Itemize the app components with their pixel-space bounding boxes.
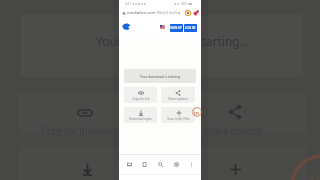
button[interactable]: Bookmarks (138, 158, 150, 170)
button[interactable]: LOG IN (184, 24, 197, 32)
staticText: m (194, 109, 200, 116)
staticText: LOG IN (185, 26, 196, 30)
staticText: mediafire.com (127, 10, 156, 16)
button[interactable]: Account (193, 10, 199, 16)
button[interactable]: Tabs (170, 158, 182, 170)
button[interactable]: Save to My Files (161, 107, 195, 123)
staticText: Copy for Innnnnnnn (41, 124, 127, 136)
staticText: Share options (204, 124, 263, 136)
staticText: Copy for link (132, 97, 150, 101)
staticText: Your download is starting (140, 74, 181, 78)
button[interactable]: Share options (161, 87, 195, 103)
button[interactable]: Search (154, 158, 166, 170)
button[interactable]: More (185, 158, 197, 170)
staticText: /file/t1ko1rq (156, 10, 181, 16)
staticText: m (307, 164, 320, 180)
button[interactable]: Download again (124, 107, 157, 123)
staticText: Your download is starting... (96, 33, 250, 49)
staticText: 68% (181, 2, 187, 6)
button[interactable]: Downloads (185, 10, 191, 16)
button[interactable]: Copy for link (124, 87, 157, 103)
button[interactable]: Home (123, 158, 135, 170)
button[interactable]: SIGN UP (170, 24, 183, 32)
staticText: SIGN UP (170, 26, 183, 30)
staticText: 5:41 (125, 2, 131, 6)
button[interactable]: Language (160, 25, 165, 29)
staticText: Download again (129, 117, 152, 121)
staticText: Share options (168, 97, 188, 101)
staticText: Save to My Files (167, 117, 190, 121)
